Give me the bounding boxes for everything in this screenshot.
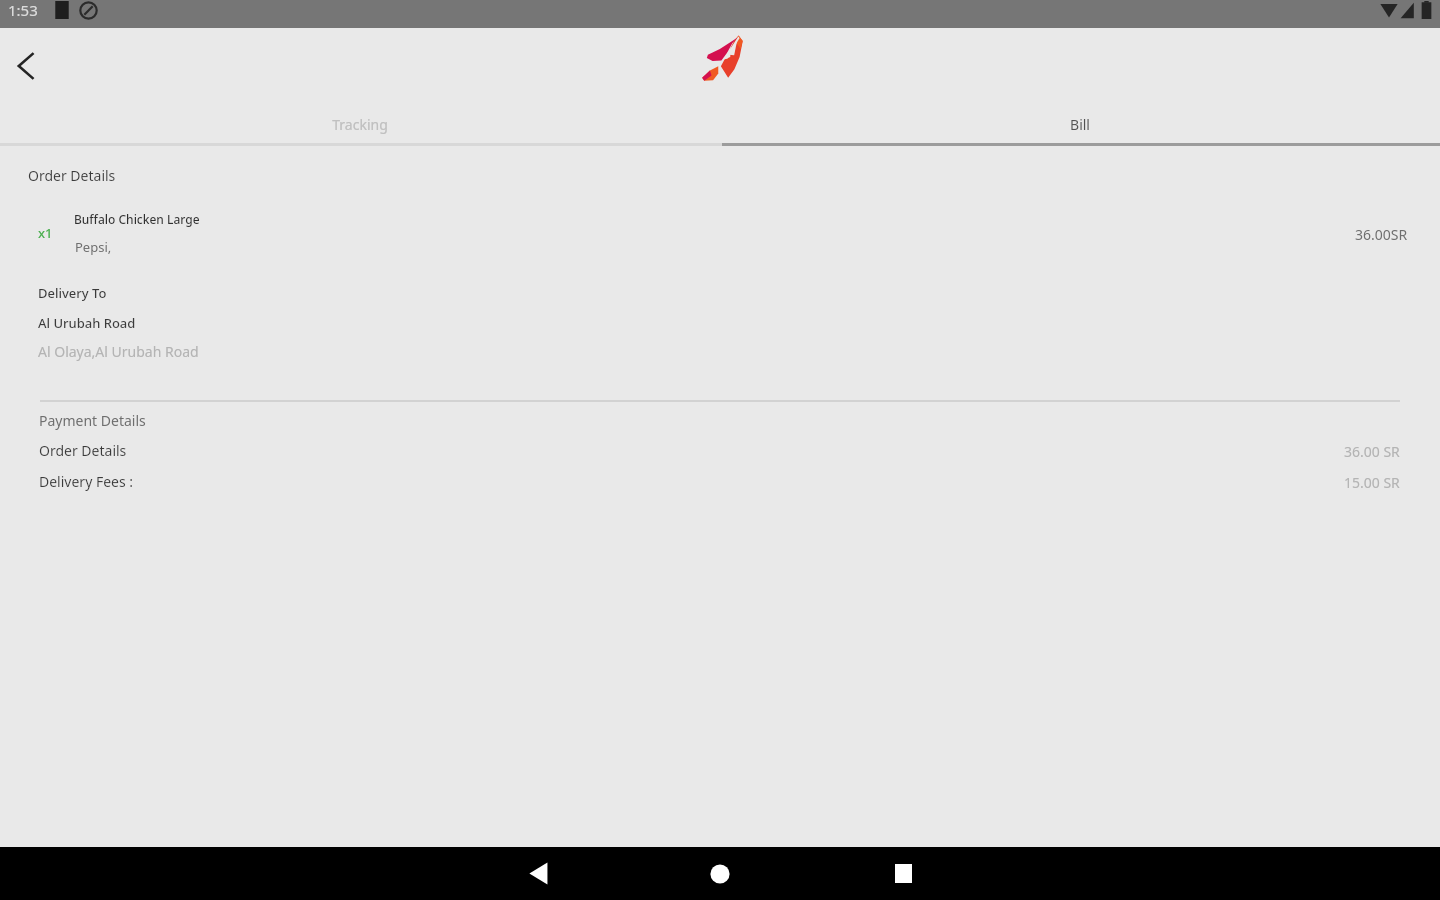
staticText: Pepsi, [75,238,112,256]
staticText: 1:53 [8,0,38,20]
button[interactable]: Recent apps [877,847,929,900]
staticText: x1 [38,224,53,242]
button[interactable]: Back [512,847,564,900]
staticText: Delivery To [38,284,107,302]
button[interactable]: Tracking [0,106,720,142]
button[interactable]: Home [694,847,746,900]
staticText: 36.00SR [1355,225,1408,244]
button[interactable]: Bill [720,106,1440,142]
staticText: 15.00 SR [1344,473,1400,492]
staticText: Buffalo Chicken Large [74,211,200,227]
staticText: Tracking [332,115,388,134]
staticText: Al Urubah Road [38,314,136,332]
staticText: Delivery Fees : [39,472,134,491]
staticText: 36.00 SR [1344,442,1400,461]
staticText: Al Olaya,Al Urubah Road [38,342,199,361]
staticText: Order Details [28,166,116,185]
staticText: Payment Details [39,411,146,430]
button[interactable]: Back [2,42,50,90]
staticText: Order Details [39,441,127,460]
staticText: Bill [1070,115,1090,134]
